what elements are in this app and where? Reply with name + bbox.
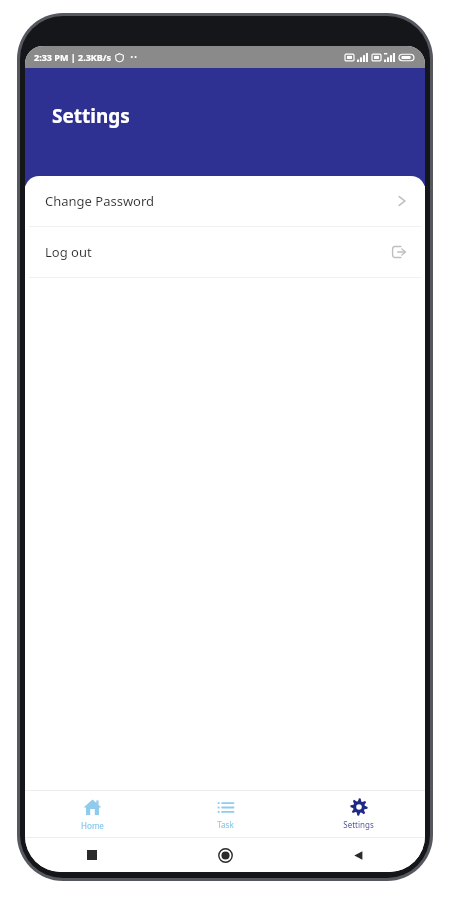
staticText: 2:33 PM | 2.3KB/s <box>34 51 112 63</box>
staticText: Change Password <box>45 192 155 210</box>
staticText: Log out <box>45 243 92 261</box>
button[interactable]: Log out <box>25 227 425 277</box>
staticText: Settings <box>343 819 374 830</box>
button[interactable]: Change Password <box>25 176 425 226</box>
staticText: Home <box>81 820 104 831</box>
button[interactable]: Home <box>25 791 159 837</box>
staticText: Settings <box>52 103 130 129</box>
staticText: Task <box>217 819 234 830</box>
button[interactable]: Settings <box>292 791 425 837</box>
button[interactable]: Task <box>159 791 292 837</box>
